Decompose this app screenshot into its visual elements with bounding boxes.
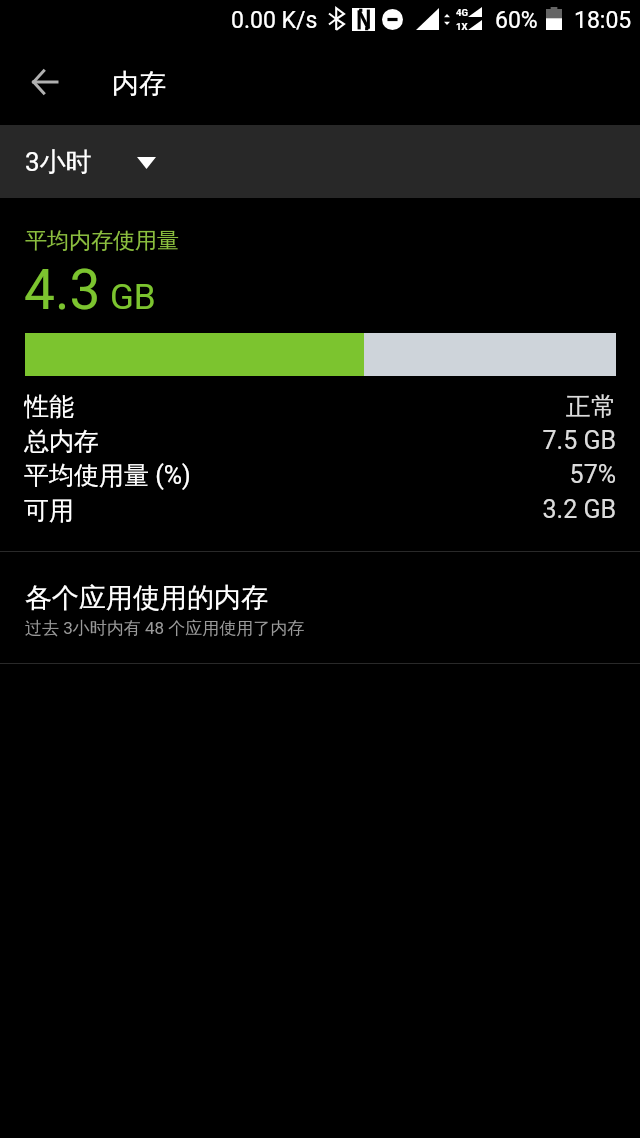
staticText: 平均内存使用量: [25, 227, 179, 255]
button[interactable]: 3小时: [0, 125, 640, 198]
staticText: 性能: [24, 391, 74, 421]
staticText: 平均使用量 (%): [24, 460, 191, 490]
staticText: 3小时: [25, 146, 92, 179]
staticText: 内存: [112, 67, 166, 101]
button[interactable]: 各个应用使用的内存: [0, 552, 640, 657]
staticText: 60%: [495, 7, 538, 34]
staticText: 7.5 GB: [542, 426, 616, 455]
staticText: 过去 3小时内有 48 个应用使用了内存: [25, 618, 305, 639]
staticText: 57%: [569, 460, 616, 489]
staticText: 18:05: [574, 7, 632, 34]
staticText: 各个应用使用的内存: [25, 581, 268, 615]
staticText: 总内存: [24, 426, 99, 456]
button[interactable]: Back: [17, 53, 72, 111]
staticText: 0.00 K/s: [231, 7, 318, 34]
staticText: 3.2 GB: [542, 495, 616, 524]
staticText: 1X: [456, 21, 468, 32]
staticText: GB: [110, 277, 156, 318]
staticText: 4.3: [24, 258, 101, 322]
staticText: 正常: [566, 391, 616, 421]
staticText: 4G: [456, 7, 468, 18]
staticText: 可用: [24, 495, 74, 525]
